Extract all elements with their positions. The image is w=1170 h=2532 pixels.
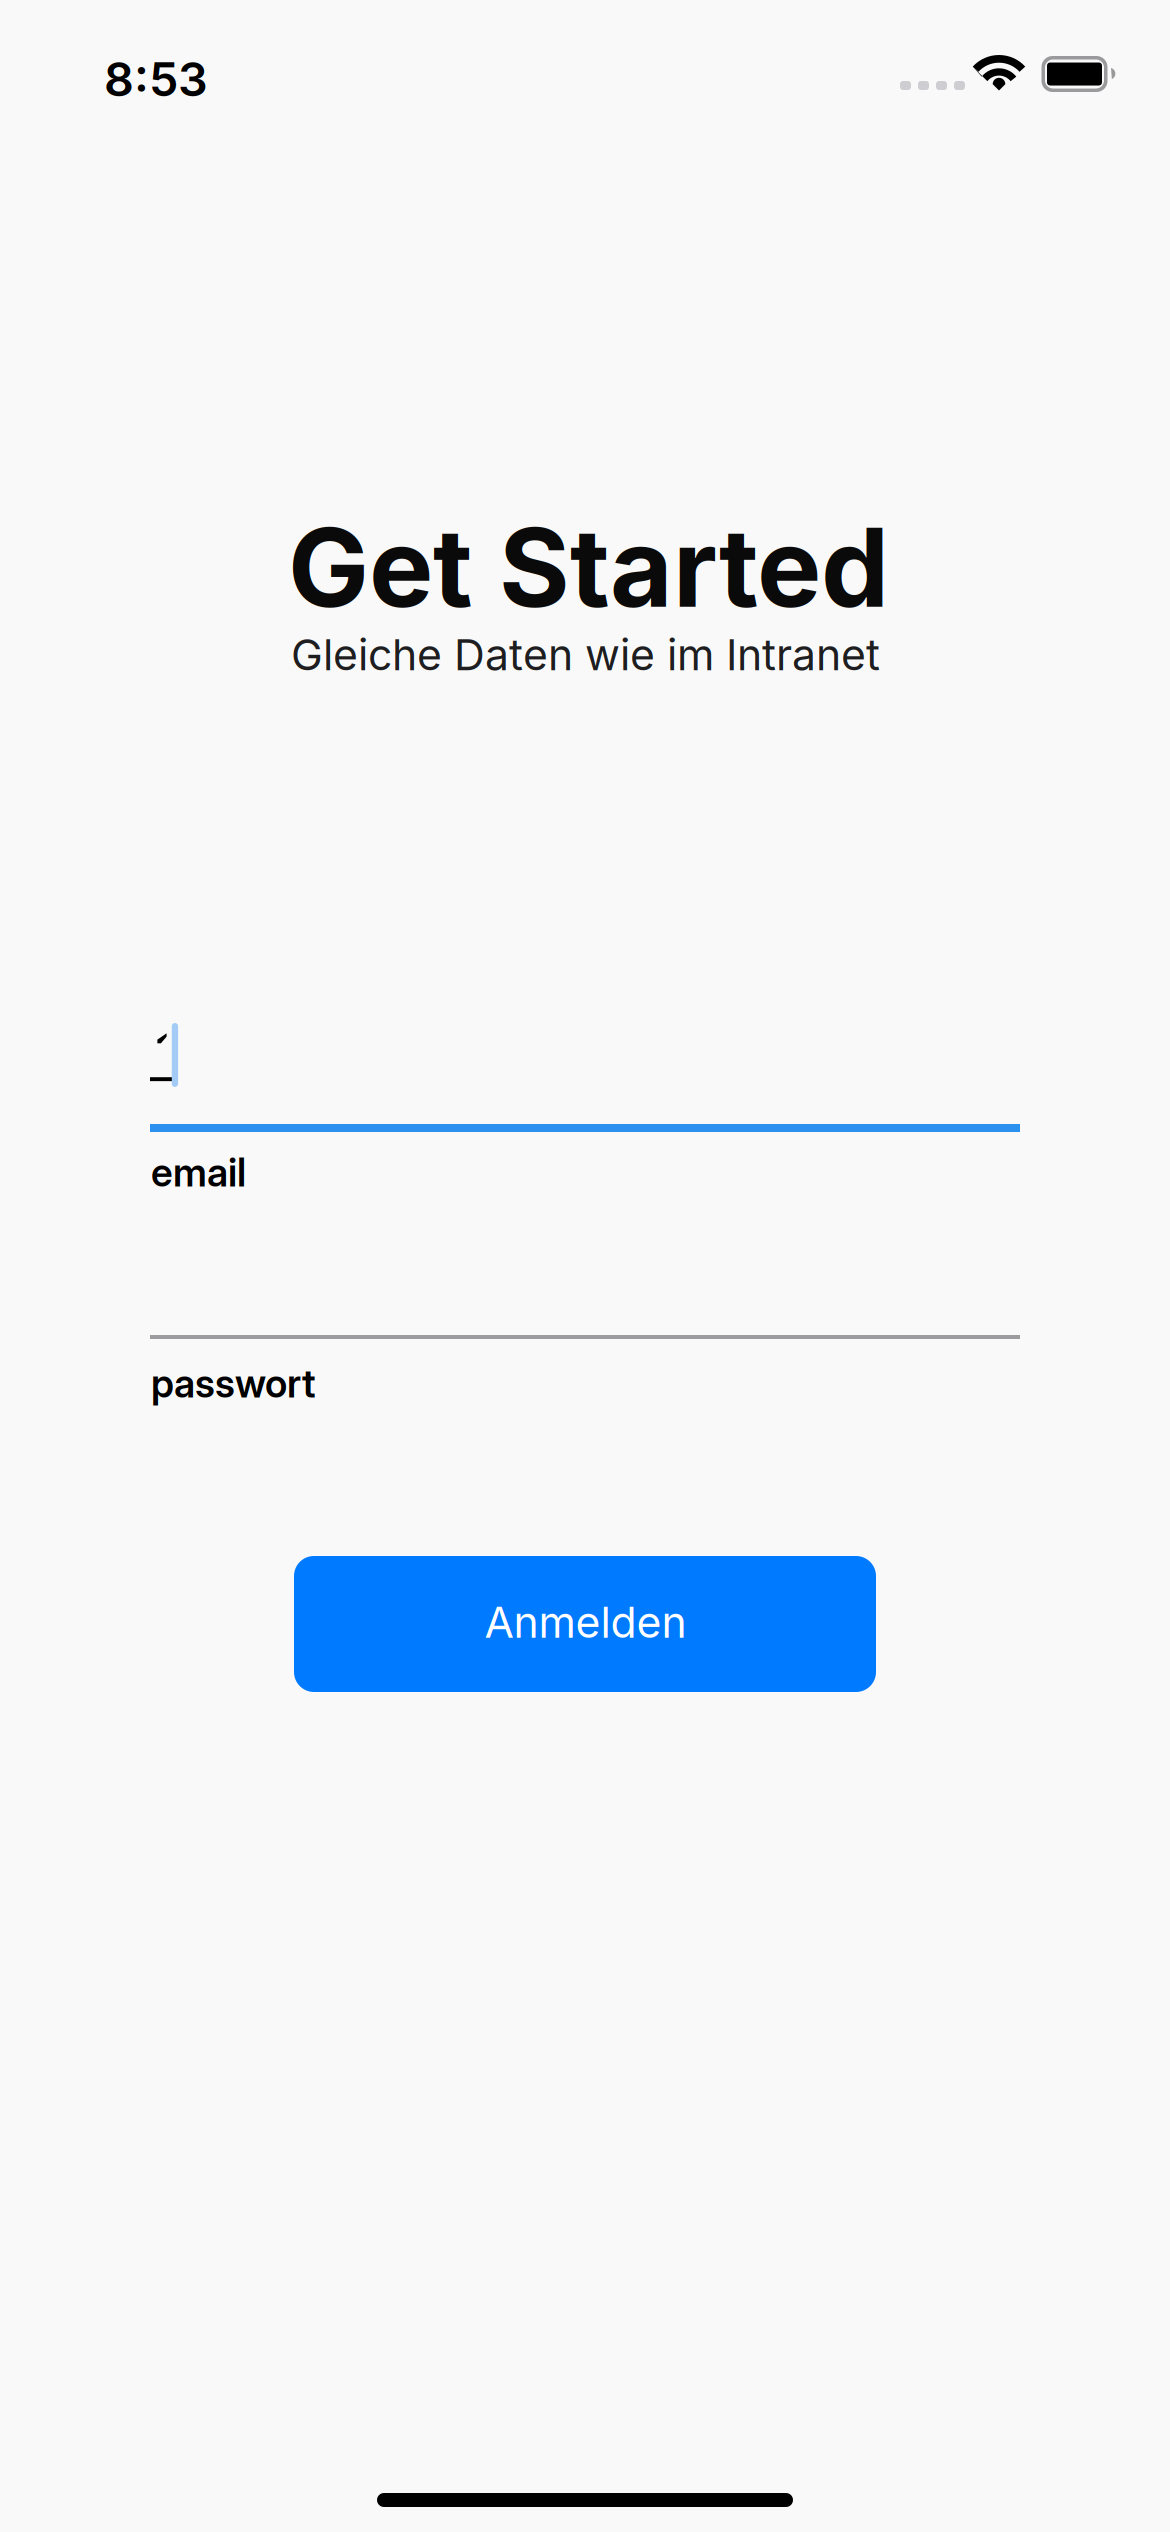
button[interactable]: email	[150, 1000, 1020, 1270]
staticText: email	[151, 1149, 246, 1196]
staticText: Gleiche Daten wie im Intranet	[291, 629, 880, 681]
staticText: Get Started	[288, 502, 889, 633]
staticText: Anmelden	[484, 1596, 686, 1648]
button[interactable]: Anmelden	[294, 1556, 876, 1692]
staticText: 8:53	[104, 51, 208, 107]
staticText: passwort	[151, 1360, 316, 1407]
button[interactable]: passwort	[150, 1210, 1020, 1422]
